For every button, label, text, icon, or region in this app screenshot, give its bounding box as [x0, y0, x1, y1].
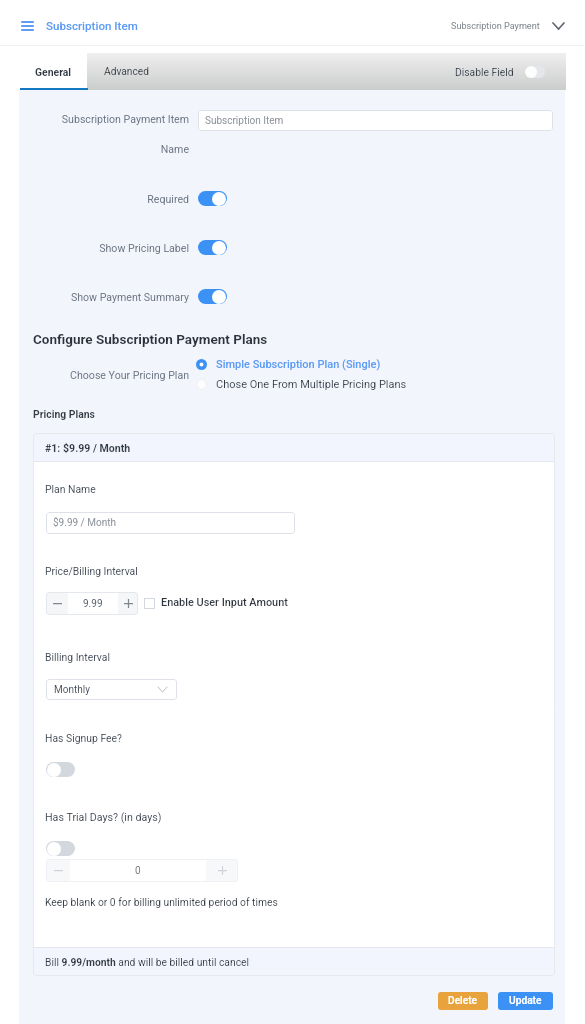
- staticText: 0: [135, 865, 141, 877]
- button[interactable]: Chose One From Multiple Pricing Plans: [196, 378, 407, 391]
- button[interactable]: Monthly: [46, 679, 177, 700]
- button[interactable]: Enabled: [198, 289, 227, 304]
- button[interactable]: Update: [498, 992, 553, 1010]
- button[interactable]: Disable Field: [455, 53, 545, 90]
- staticText: Subscription Payment Item: [29, 113, 189, 125]
- button[interactable]: Enabled: [198, 191, 227, 206]
- staticText: Keep blank or 0 for billing unlimited pe…: [45, 896, 278, 908]
- button[interactable]: Enabled: [198, 240, 227, 255]
- staticText: Show Pricing Label: [29, 242, 189, 254]
- staticText: Billing Interval: [45, 651, 110, 663]
- button[interactable]: Enable User Input Amount: [144, 598, 155, 609]
- staticText: Simple Subscription Plan (Single): [216, 358, 381, 371]
- staticText: Configure Subscription Payment Plans: [33, 331, 268, 347]
- button[interactable]: Disabled: [46, 841, 75, 856]
- button[interactable]: Subscription Item: [198, 110, 553, 131]
- button[interactable]: 9.99: [68, 592, 118, 615]
- button[interactable]: 0: [70, 859, 206, 882]
- button[interactable]: Menu: [22, 15, 33, 37]
- staticText: $9.99 / Month: [53, 517, 116, 529]
- staticText: Price/Billing Interval: [45, 565, 138, 577]
- button[interactable]: Increase: [118, 592, 138, 615]
- staticText: Subscription Item: [46, 19, 138, 33]
- staticText: Delete: [448, 995, 478, 1007]
- staticText: Update: [509, 995, 542, 1007]
- staticText: Disable Field: [455, 66, 514, 78]
- staticText: Bill 9.99/month and will be billed until…: [45, 956, 250, 968]
- button[interactable]: Simple Subscription Plan (Single): [196, 358, 381, 371]
- button[interactable]: $9.99 / Month: [46, 512, 295, 534]
- staticText: Chose One From Multiple Pricing Plans: [216, 378, 407, 391]
- staticText: Advanced: [104, 66, 149, 78]
- staticText: Choose Your Pricing Plan: [29, 369, 189, 381]
- button[interactable]: Subscription Payment: [451, 16, 564, 36]
- staticText: Has Trial Days? (in days): [45, 811, 162, 824]
- staticText: Show Payment Summary: [29, 291, 189, 303]
- staticText: Enable User Input Amount: [161, 596, 288, 609]
- button[interactable]: Increase: [206, 859, 238, 882]
- staticText: Pricing Plans: [33, 408, 95, 420]
- button[interactable]: Advanced: [88, 53, 165, 90]
- staticText: 9.99: [83, 598, 103, 610]
- staticText: Plan Name: [45, 483, 96, 495]
- staticText: Required: [29, 193, 189, 205]
- staticText: Subscription Payment: [451, 21, 540, 32]
- button[interactable]: Delete: [438, 992, 488, 1010]
- button[interactable]: Decrease: [46, 592, 68, 615]
- staticText: #1: $9.99 / Month: [45, 442, 131, 454]
- button[interactable]: [196, 379, 207, 390]
- staticText: Name: [29, 143, 189, 155]
- staticText: Monthly: [54, 684, 90, 696]
- button[interactable]: [196, 359, 207, 370]
- button[interactable]: Disabled: [46, 762, 75, 777]
- staticText: Subscription Item: [205, 115, 284, 127]
- staticText: General: [35, 66, 72, 78]
- staticText: Has Signup Fee?: [45, 732, 122, 744]
- button[interactable]: Decrease: [46, 859, 70, 882]
- button[interactable]: General: [20, 53, 87, 90]
